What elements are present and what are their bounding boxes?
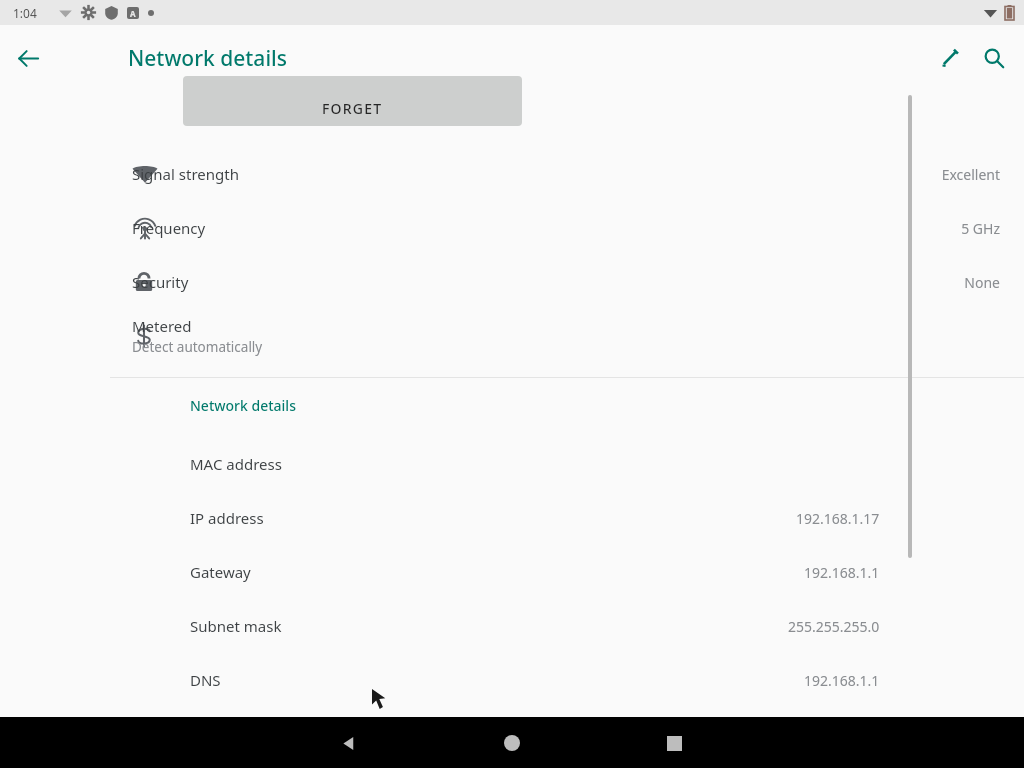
- button[interactable]: Gateway: [0, 545, 1024, 599]
- button[interactable]: Home: [488, 719, 536, 767]
- staticText: DNS: [190, 670, 221, 690]
- staticText: 5 GHz: [961, 219, 1000, 238]
- staticText: Frequency: [132, 218, 206, 238]
- button[interactable]: FORGET: [183, 76, 522, 126]
- staticText: FORGET: [322, 99, 383, 118]
- staticText: Network details: [190, 396, 296, 415]
- button[interactable]: Back: [325, 719, 373, 767]
- button[interactable]: Search: [972, 36, 1016, 80]
- staticText: 1:04: [13, 5, 37, 21]
- staticText: Security: [132, 272, 189, 292]
- staticText: Metered: [132, 316, 192, 336]
- button[interactable]: MAC address: [0, 437, 1024, 491]
- button[interactable]: Security: [0, 255, 1024, 309]
- staticText: IP address: [190, 508, 264, 528]
- staticText: Network details: [128, 44, 287, 73]
- staticText: 192.168.1.1: [804, 563, 880, 582]
- staticText: Gateway: [190, 562, 251, 582]
- staticText: 192.168.1.1: [804, 671, 880, 690]
- staticText: A: [130, 8, 136, 19]
- staticText: MAC address: [190, 454, 282, 474]
- button[interactable]: Metered: [0, 309, 1024, 363]
- button[interactable]: Subnet mask: [0, 599, 1024, 653]
- button[interactable]: IP address: [0, 491, 1024, 545]
- staticText: Subnet mask: [190, 616, 282, 636]
- staticText: 192.168.1.17: [796, 509, 880, 528]
- button[interactable]: Edit: [928, 36, 972, 80]
- staticText: Signal strength: [132, 164, 239, 184]
- staticText: None: [964, 273, 1000, 292]
- button[interactable]: Recent apps: [650, 719, 698, 767]
- button[interactable]: Frequency: [0, 201, 1024, 255]
- button[interactable]: Back: [8, 38, 48, 78]
- staticText: Detect automatically: [132, 338, 263, 356]
- staticText: Excellent: [941, 165, 1000, 184]
- button[interactable]: DNS: [0, 653, 1024, 707]
- staticText: 255.255.255.0: [788, 617, 880, 636]
- button[interactable]: Signal strength: [0, 147, 1024, 201]
